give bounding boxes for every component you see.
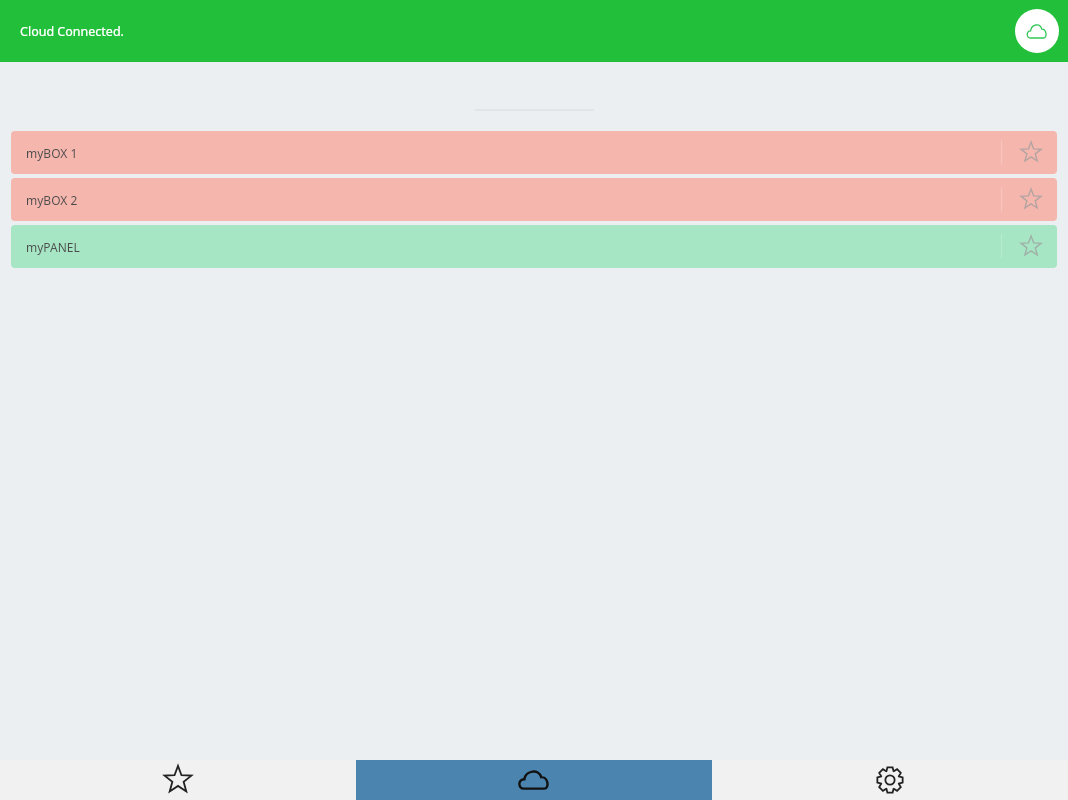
button[interactable]: Favorite myBOX 1: [1000, 131, 1057, 174]
button[interactable]: Favorite myBOX 2: [1000, 178, 1057, 221]
staticText: Cloud Connected.: [20, 23, 124, 40]
staticText: myBOX 1: [26, 145, 78, 161]
button[interactable]: Settings: [712, 760, 1068, 800]
staticText: myBOX 2: [26, 192, 78, 208]
staticText: myPANEL: [26, 239, 80, 255]
button[interactable]: Favorite myPANEL: [1000, 225, 1057, 268]
button[interactable]: Favorites: [0, 760, 356, 800]
button[interactable]: myBOX 1: [11, 131, 1057, 174]
button[interactable]: Cloud: [356, 760, 712, 800]
button[interactable]: Cloud connection: [1015, 9, 1059, 53]
button[interactable]: myPANEL: [11, 225, 1057, 268]
button[interactable]: myBOX 2: [11, 178, 1057, 221]
